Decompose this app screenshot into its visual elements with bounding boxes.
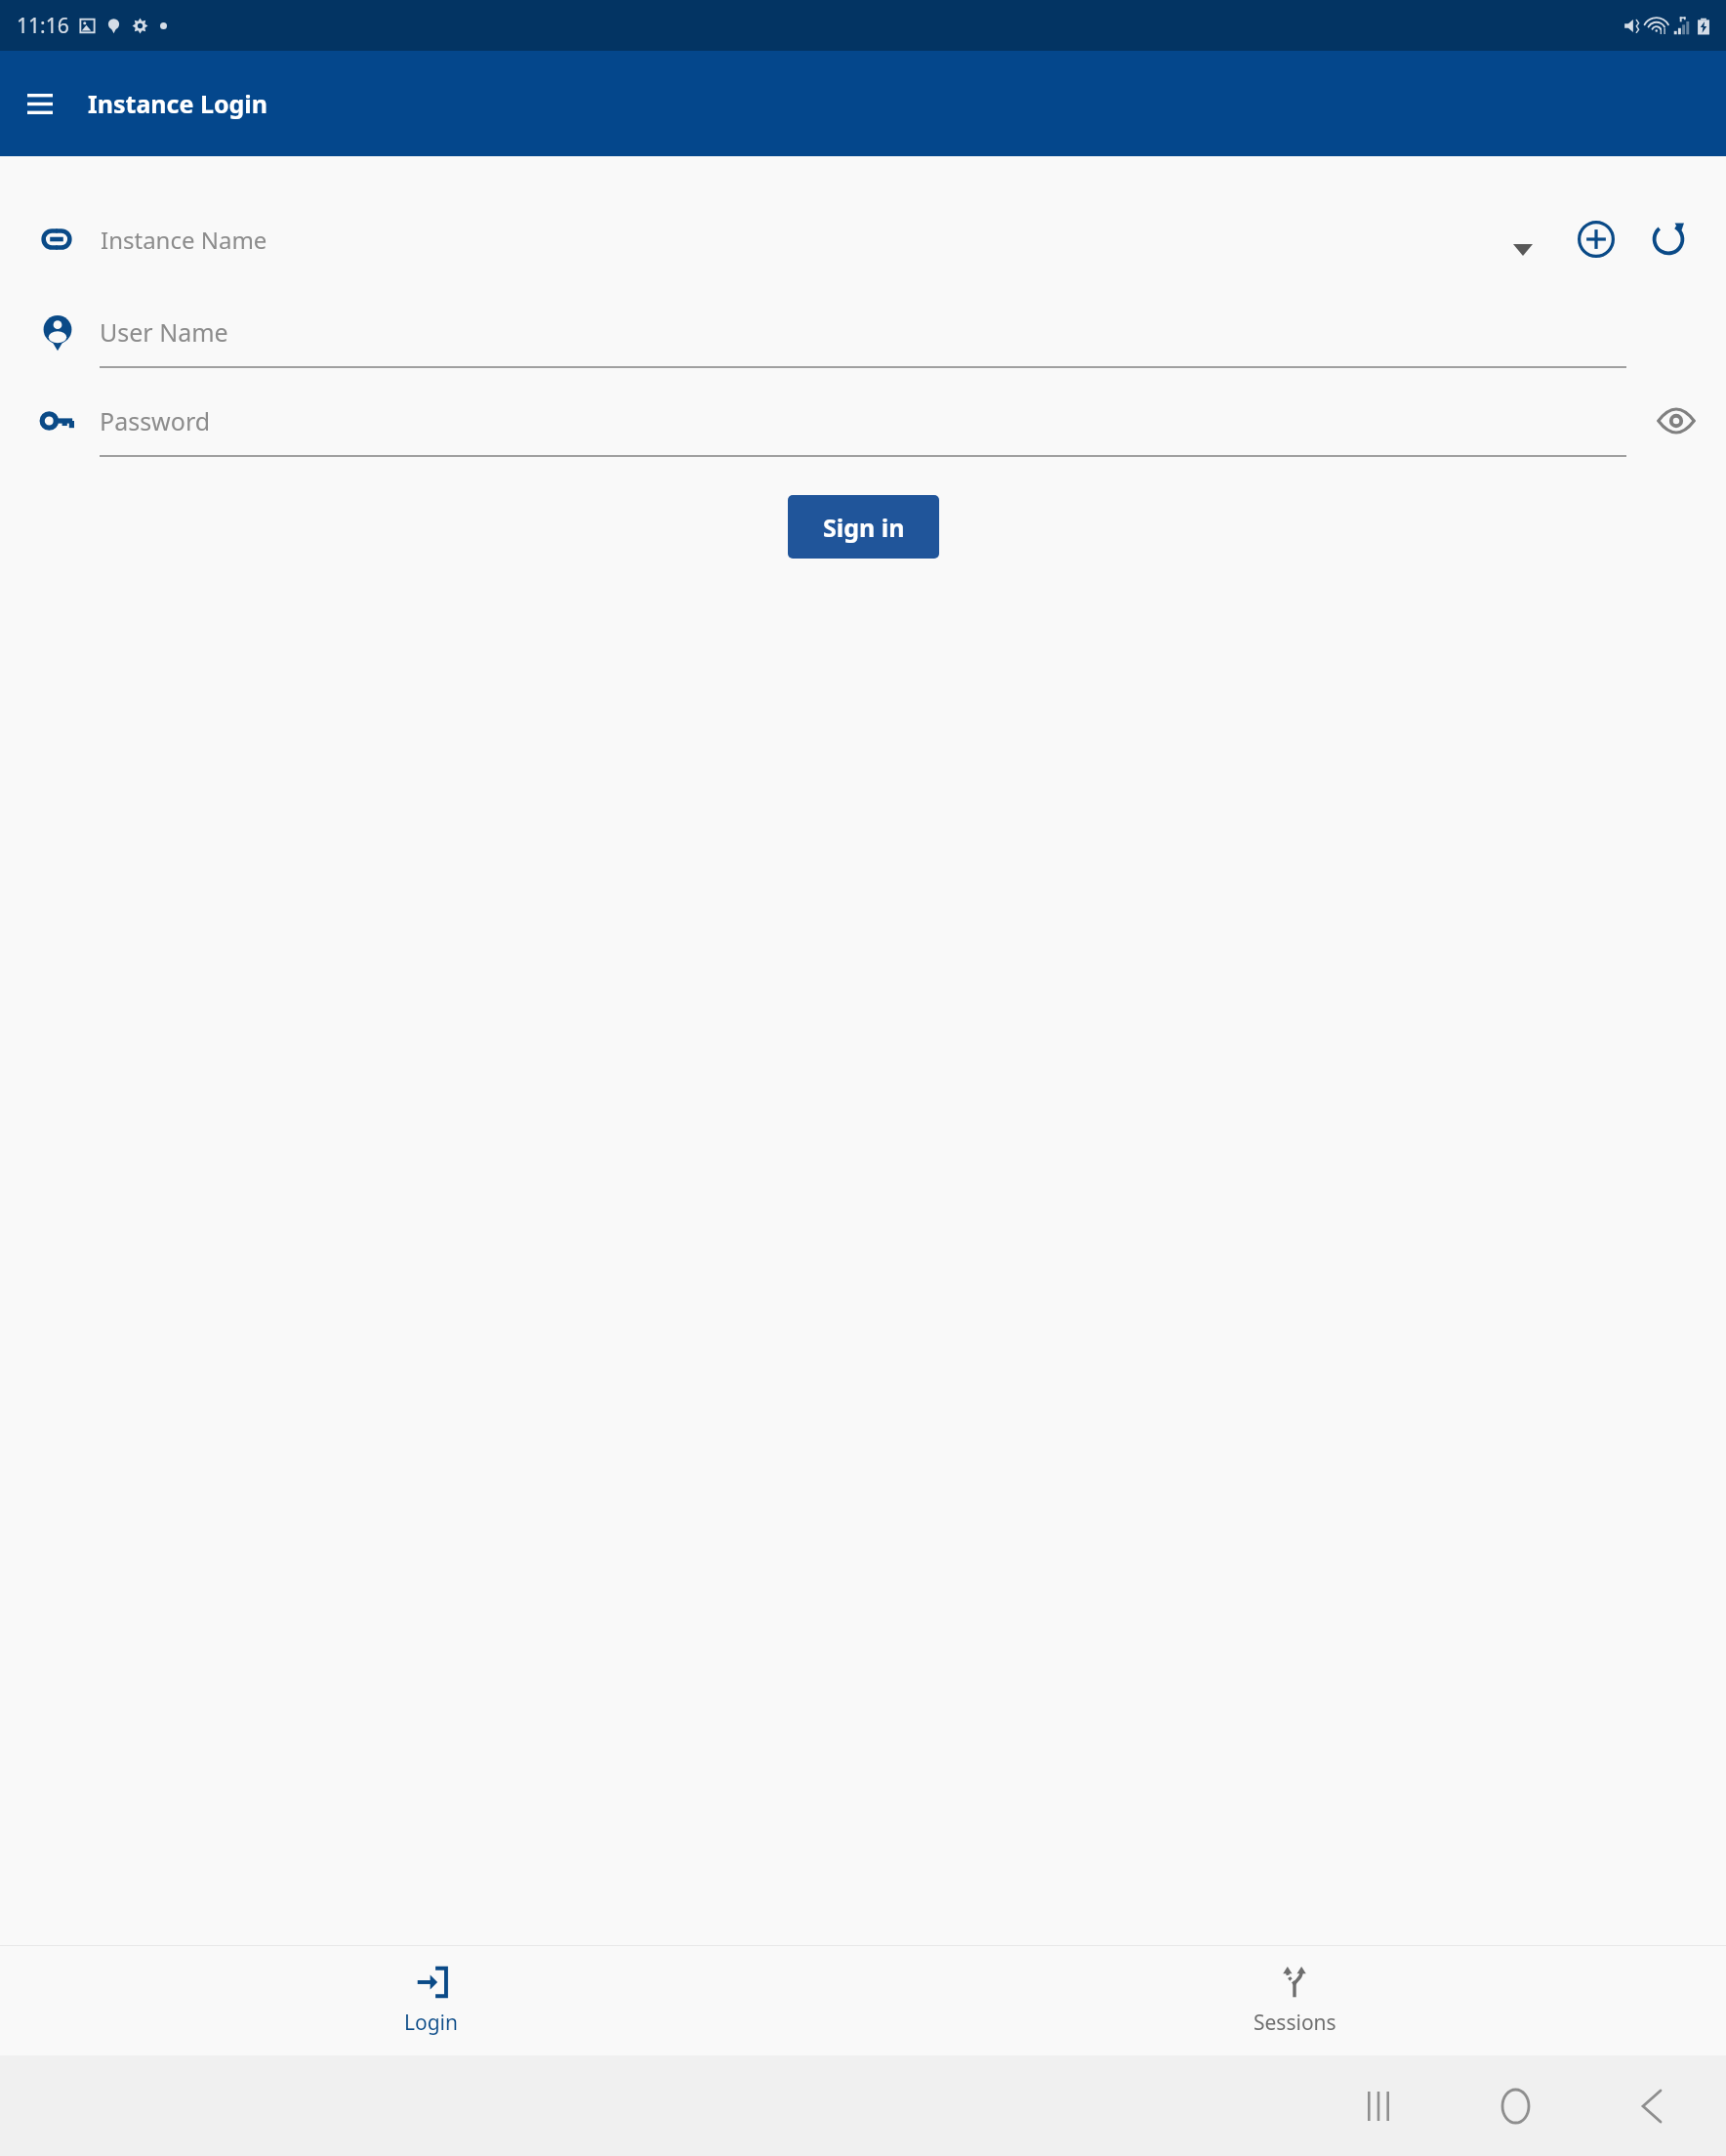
button[interactable]: Refresh instances: [1642, 213, 1695, 266]
staticText: Sign in: [823, 511, 905, 544]
button[interactable]: Instance Name: [101, 208, 1570, 270]
staticText: Instance Name: [101, 224, 267, 256]
button[interactable]: Show password: [1650, 394, 1703, 447]
button[interactable]: Open navigation menu: [12, 75, 68, 132]
button[interactable]: Password: [100, 387, 1650, 455]
staticText: 11:16: [17, 12, 69, 40]
staticText: User Name: [100, 315, 228, 349]
button[interactable]: Add instance: [1570, 213, 1623, 266]
button[interactable]: Back: [1613, 2067, 1691, 2145]
button[interactable]: Sign in: [788, 495, 939, 559]
button[interactable]: Login: [0, 1946, 863, 2055]
staticText: Instance Login: [88, 87, 268, 120]
button[interactable]: User Name: [100, 298, 1650, 366]
button[interactable]: Recent apps: [1339, 2067, 1418, 2145]
button[interactable]: Home: [1476, 2067, 1554, 2145]
staticText: Sessions: [1253, 2009, 1336, 2037]
button[interactable]: Sessions: [863, 1946, 1726, 2055]
staticText: Login: [404, 2009, 459, 2037]
staticText: Password: [100, 404, 211, 437]
